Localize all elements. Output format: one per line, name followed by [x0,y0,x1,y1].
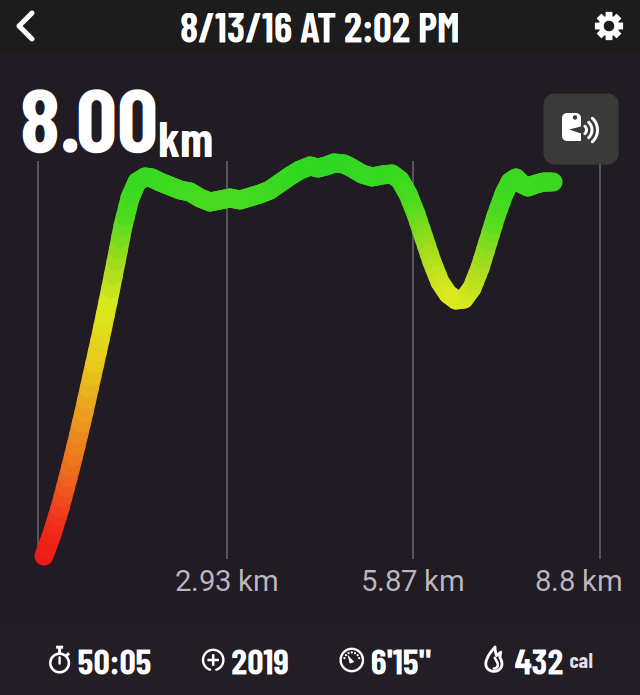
button[interactable]: Back [0,1,56,51]
staticText: 8/13/16 AT 2:02 PM [180,1,460,51]
staticText: 432 [514,638,563,682]
staticText: 2019 [231,638,289,682]
button[interactable]: Voice feedback [543,93,618,164]
button[interactable]: 432 [478,639,594,681]
staticText: cal [569,647,592,672]
staticText: 5.87 km [361,564,465,598]
button[interactable]: 50:05 [46,639,154,681]
staticText: km [158,108,213,167]
staticText: 6'15" [371,638,431,682]
staticText: 2.93 km [175,564,279,598]
staticText: 8.8 km [535,564,623,598]
button[interactable]: 6'15" [337,639,433,681]
button[interactable]: 2019 [199,639,291,681]
staticText: 50:05 [78,638,152,682]
button[interactable]: Settings [576,1,640,51]
staticText: 8.00 [20,62,158,171]
